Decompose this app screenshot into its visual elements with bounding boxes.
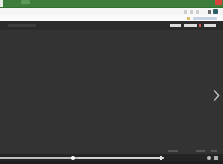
- button[interactable]: Account: [213, 9, 218, 14]
- button[interactable]: Tab: [21, 0, 30, 4]
- button[interactable]: Next: [210, 86, 223, 104]
- button[interactable]: Volume: [207, 156, 211, 160]
- button[interactable]: Seek bar: [0, 157, 164, 159]
